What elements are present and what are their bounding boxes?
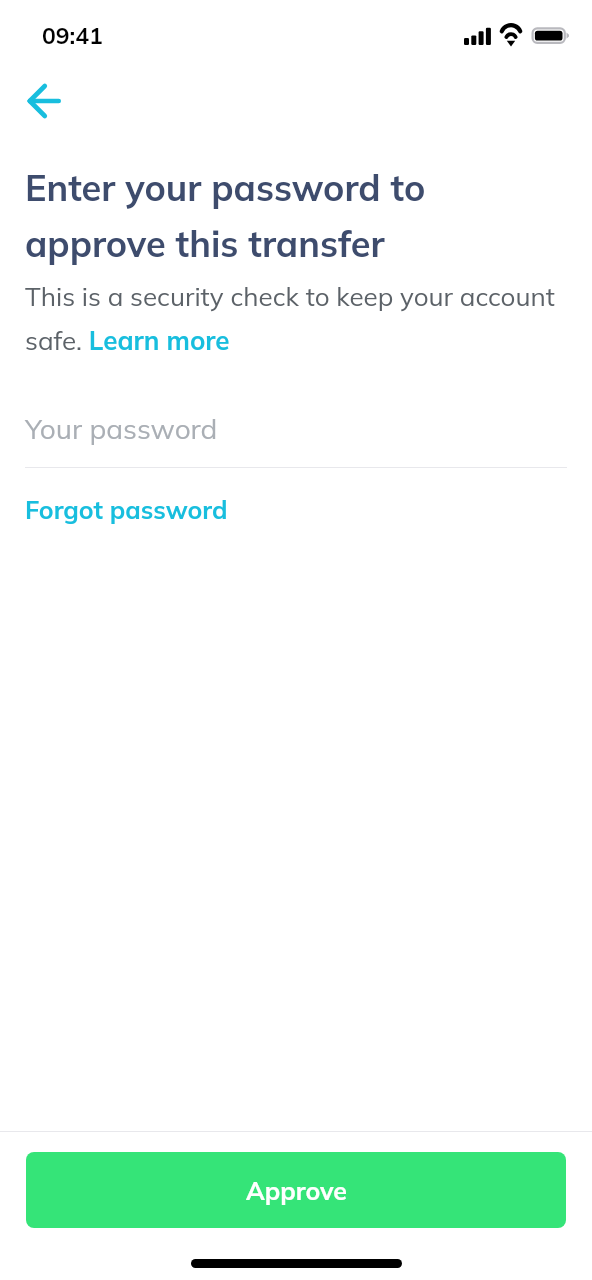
staticText: Enter your password to approve this tran… [25, 156, 567, 268]
staticText: This is a security check to keep your ac… [25, 271, 567, 359]
staticText: 09:41 [42, 21, 103, 50]
staticText: Approve [246, 1175, 347, 1206]
button[interactable]: Approve [26, 1152, 566, 1228]
button[interactable]: Back [13, 70, 75, 132]
button[interactable]: Your password [25, 411, 567, 468]
staticText: Forgot password [25, 494, 228, 525]
staticText: Your password [25, 411, 218, 446]
button[interactable]: Forgot password [25, 494, 228, 525]
